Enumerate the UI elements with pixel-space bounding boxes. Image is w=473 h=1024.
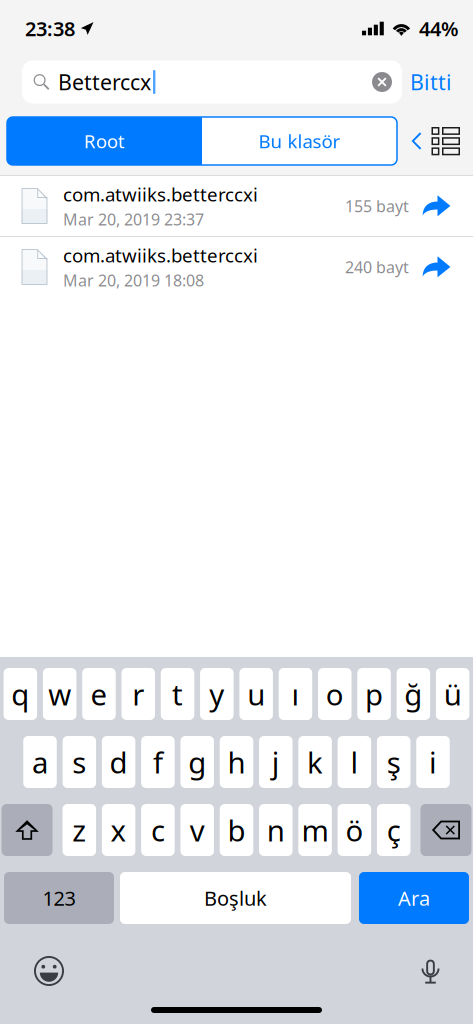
staticText: 44% <box>419 15 459 42</box>
button[interactable]: s <box>62 736 96 788</box>
button[interactable]: ş <box>377 736 410 788</box>
button[interactable]: b <box>220 804 253 856</box>
button[interactable]: j <box>259 736 293 788</box>
button[interactable]: l <box>338 736 371 788</box>
staticText: a <box>32 742 48 781</box>
staticText: e <box>90 674 107 713</box>
staticText: z <box>72 810 86 849</box>
staticText: ö <box>345 810 363 849</box>
button[interactable]: f <box>141 736 175 788</box>
button[interactable]: c <box>141 804 175 856</box>
staticText: m <box>302 810 329 849</box>
button[interactable]: x <box>102 804 135 856</box>
staticText: ç <box>387 810 401 849</box>
button[interactable]: 123 <box>4 872 114 924</box>
button[interactable]: Shift <box>2 804 53 856</box>
staticText: Bu klasör <box>258 129 340 153</box>
button[interactable]: ğ <box>397 668 430 720</box>
button[interactable]: g <box>180 736 214 788</box>
staticText: Ara <box>398 885 430 911</box>
button[interactable]: t <box>161 668 194 720</box>
button[interactable]: p <box>357 668 391 720</box>
staticText: l <box>350 742 358 781</box>
button[interactable]: q <box>4 668 37 720</box>
staticText: y <box>209 674 224 713</box>
button[interactable]: y <box>200 668 234 720</box>
button[interactable]: Bitti <box>410 68 452 96</box>
staticText: b <box>227 810 245 849</box>
button[interactable]: r <box>121 668 155 720</box>
button[interactable]: ö <box>338 804 371 856</box>
staticText: x <box>111 810 127 849</box>
staticText: ş <box>387 742 401 781</box>
button[interactable]: Root <box>7 117 202 165</box>
staticText: o <box>326 674 344 713</box>
staticText: com.atwiiks.betterccxi <box>63 243 258 268</box>
button[interactable]: h <box>220 736 253 788</box>
staticText: 155 bayt <box>345 195 409 217</box>
staticText: 23:38 <box>25 15 75 42</box>
staticText: ğ <box>404 674 422 713</box>
button[interactable]: v <box>180 804 214 856</box>
staticText: Bitti <box>410 68 452 96</box>
staticText: q <box>11 674 29 713</box>
button[interactable]: w <box>43 668 76 720</box>
staticText: t <box>172 674 183 713</box>
staticText: ı <box>291 674 299 713</box>
staticText: f <box>153 742 163 781</box>
button[interactable]: k <box>298 736 332 788</box>
button[interactable]: Bu klasör <box>202 117 397 165</box>
staticText: i <box>429 742 437 781</box>
staticText: r <box>132 674 144 713</box>
button[interactable]: Ara <box>359 872 469 924</box>
button[interactable]: m <box>298 804 332 856</box>
staticText: h <box>227 742 245 781</box>
button[interactable]: ı <box>279 668 312 720</box>
button[interactable]: e <box>82 668 116 720</box>
staticText: Mar 20, 2019 18:08 <box>63 270 204 291</box>
staticText: v <box>190 810 205 849</box>
button[interactable]: com.atwiiks.betterccxi <box>0 237 473 297</box>
staticText: com.atwiiks.betterccxi <box>63 182 258 207</box>
staticText: u <box>247 674 265 713</box>
staticText: Boşluk <box>204 885 267 911</box>
button[interactable]: ç <box>377 804 410 856</box>
staticText: c <box>151 810 165 849</box>
staticText: w <box>48 674 71 713</box>
button[interactable]: Emoji keyboard <box>33 955 65 987</box>
staticText: Root <box>84 129 125 153</box>
button[interactable]: o <box>318 668 351 720</box>
staticText: n <box>267 810 285 849</box>
button[interactable]: a <box>23 736 57 788</box>
button[interactable]: i <box>416 736 450 788</box>
button[interactable]: Back <box>411 132 421 150</box>
staticText: d <box>110 742 128 781</box>
staticText: p <box>365 674 383 713</box>
staticText: k <box>307 742 323 781</box>
button[interactable]: com.atwiiks.betterccxi <box>0 176 473 236</box>
staticText: Mar 20, 2019 23:37 <box>63 209 204 230</box>
button[interactable]: d <box>102 736 135 788</box>
button[interactable]: Dictation <box>421 956 440 985</box>
staticText: 240 bayt <box>345 256 409 278</box>
staticText: g <box>188 742 206 781</box>
button[interactable]: List layout <box>431 127 460 155</box>
button[interactable]: z <box>63 804 96 856</box>
button[interactable]: Delete <box>420 804 471 856</box>
button[interactable]: u <box>239 668 273 720</box>
button[interactable]: Boşluk <box>120 872 351 924</box>
staticText: j <box>272 742 280 781</box>
staticText: ü <box>444 674 462 713</box>
button[interactable]: ü <box>436 668 469 720</box>
staticText: Betterccx <box>58 68 151 96</box>
staticText: 123 <box>42 885 75 911</box>
button[interactable]: n <box>259 804 293 856</box>
staticText: s <box>72 742 86 781</box>
button[interactable]: Clear text <box>372 72 392 92</box>
